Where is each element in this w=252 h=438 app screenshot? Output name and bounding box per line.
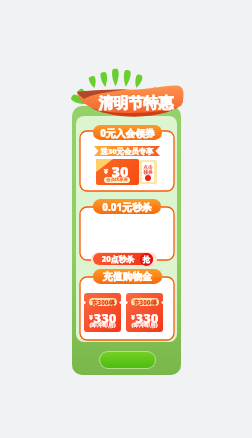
staticText: ¥ — [100, 166, 112, 176]
staticText: 充300得 — [89, 298, 117, 307]
staticText: 领券 — [142, 169, 154, 175]
button[interactable] — [80, 277, 174, 340]
button[interactable] — [80, 207, 174, 260]
button[interactable] — [93, 125, 162, 140]
button[interactable] — [126, 293, 163, 332]
staticText: (即冲即用) — [126, 321, 163, 329]
button[interactable] — [93, 199, 161, 214]
button[interactable] — [84, 293, 121, 332]
staticText: 充值购物金 — [93, 271, 162, 283]
staticText: 30 — [108, 161, 132, 181]
staticText: 330 — [135, 309, 159, 327]
staticText: 会员优享券 — [104, 177, 130, 182]
button[interactable]: Home — [100, 352, 155, 368]
staticText: 充300得 — [131, 298, 159, 307]
button[interactable]: 领券 — [139, 160, 157, 184]
button[interactable] — [93, 269, 162, 284]
staticText: 20点秒杀 — [93, 254, 143, 265]
staticText: 抢 — [140, 255, 153, 264]
button[interactable] — [96, 159, 139, 185]
button[interactable] — [80, 131, 174, 191]
staticText: 330 — [93, 309, 117, 327]
button[interactable] — [140, 253, 153, 266]
staticText: 清明节特惠 — [98, 94, 174, 113]
staticText: 送30元会员专享 — [94, 146, 160, 156]
staticText: ¥ — [87, 313, 95, 322]
staticText: 点击 — [142, 164, 154, 170]
button[interactable] — [93, 253, 153, 265]
staticText: (即冲即用) — [84, 321, 121, 329]
staticText: 0元入会领券 — [93, 127, 162, 140]
staticText: ¥ — [129, 313, 137, 322]
staticText: 0.01元秒杀 — [93, 201, 161, 214]
